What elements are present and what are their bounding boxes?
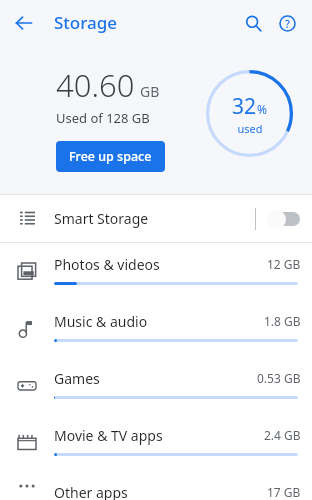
button[interactable]: Free up space [56, 141, 165, 172]
staticText: Smart Storage [54, 209, 149, 228]
staticText: 12 GB [267, 256, 301, 272]
button[interactable]: Smart Storage [0, 195, 312, 242]
button[interactable]: Movie & TV apps [0, 414, 312, 471]
staticText: 2.4 GB [264, 427, 301, 443]
button[interactable]: Back [6, 5, 42, 41]
button[interactable]: Help [270, 6, 304, 40]
staticText: Games [54, 369, 100, 388]
staticText: used [237, 121, 263, 136]
staticText: Storage [54, 11, 118, 34]
staticText: 40.60 [56, 64, 135, 106]
staticText: Other apps [54, 483, 128, 500]
button[interactable]: Smart Storage toggle [256, 195, 312, 242]
button[interactable]: Music & audio [0, 300, 312, 357]
staticText: GB [140, 82, 160, 101]
button[interactable]: Other apps [0, 471, 312, 500]
staticText: Free up space [69, 148, 152, 165]
staticText: % [257, 101, 267, 117]
button[interactable]: Photos & videos [0, 243, 312, 300]
staticText: Photos & videos [54, 255, 160, 274]
staticText: Used of 128 GB [56, 109, 150, 127]
staticText: ? [285, 16, 290, 31]
staticText: Music & audio [54, 312, 148, 331]
staticText: 17 GB [267, 484, 301, 500]
button[interactable]: Games [0, 357, 312, 414]
staticText: Movie & TV apps [54, 426, 163, 445]
staticText: 1.8 GB [264, 313, 301, 329]
button[interactable]: Search [236, 6, 270, 40]
staticText: 32 [232, 92, 257, 121]
staticText: 0.53 GB [257, 370, 301, 386]
